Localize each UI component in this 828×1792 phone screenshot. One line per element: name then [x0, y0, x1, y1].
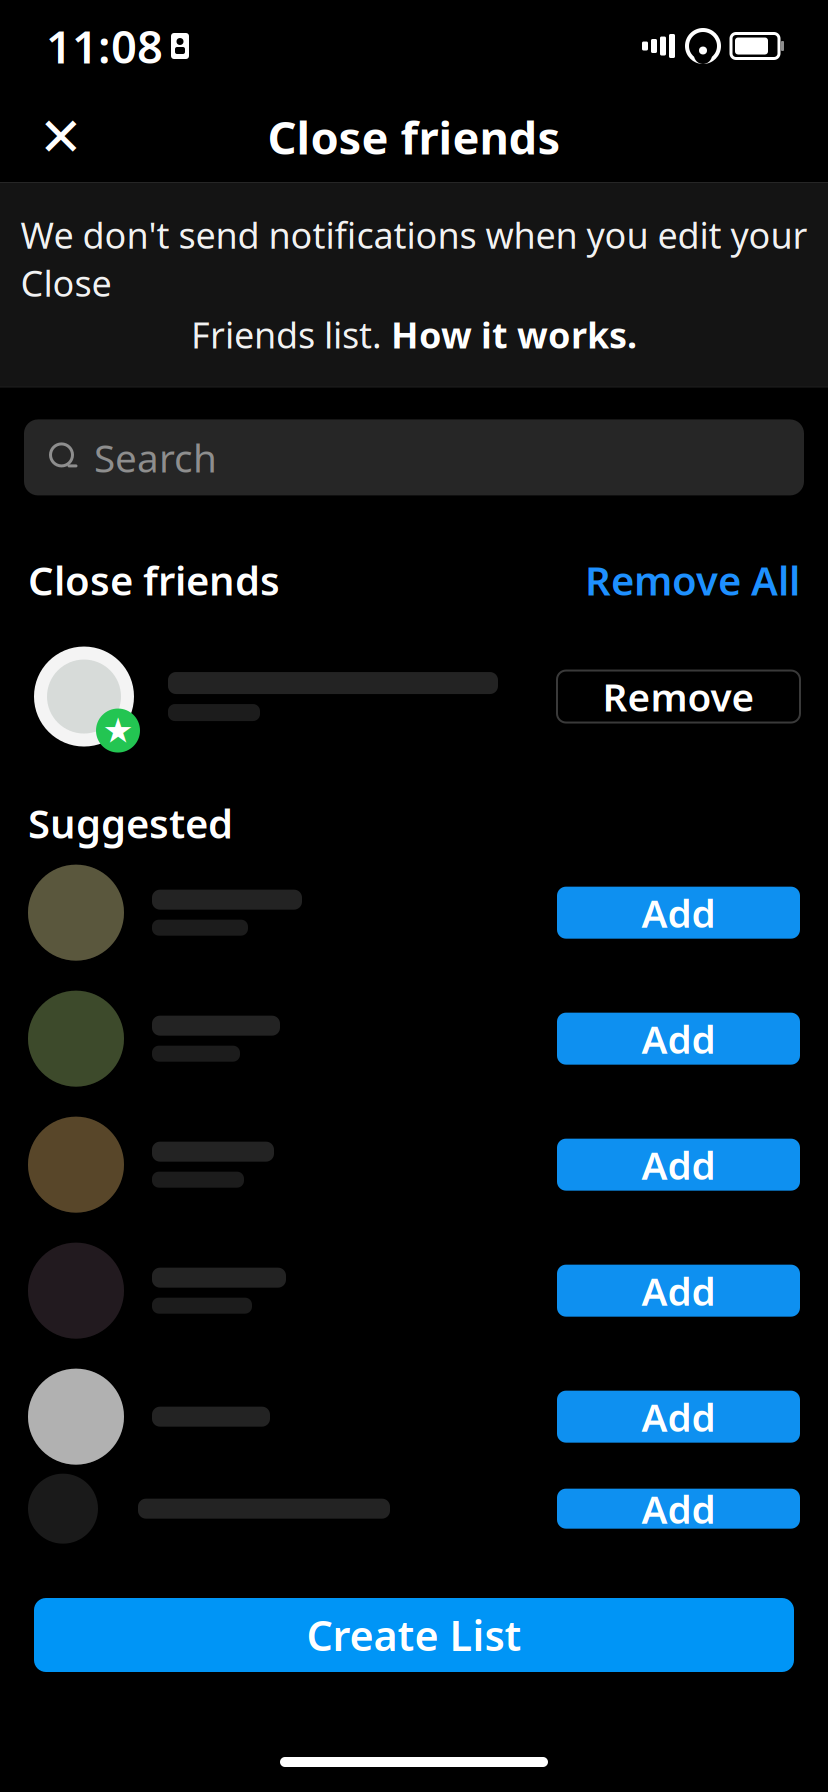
staticText: Add — [641, 1139, 715, 1190]
button[interactable]: ★ — [0, 614, 828, 752]
button[interactable]: Search — [24, 419, 804, 495]
staticText: Close friends — [28, 553, 280, 606]
staticText: We don't send notifications when you edi… — [20, 211, 807, 307]
staticText: Remove All — [585, 553, 800, 606]
staticText: Suggested — [28, 796, 233, 850]
button[interactable]: We don't send notifications when you edi… — [0, 183, 828, 386]
staticText: ★ — [102, 711, 133, 750]
button[interactable]: Add — [0, 1228, 828, 1354]
staticText: Close friends — [267, 107, 560, 167]
button[interactable]: Add — [0, 976, 828, 1102]
staticText: Add — [641, 1391, 715, 1442]
staticText: Add — [641, 1483, 715, 1534]
staticText: Remove — [602, 671, 754, 722]
staticText: Add — [641, 1265, 715, 1316]
button[interactable]: Remove All — [585, 545, 800, 614]
button[interactable]: Add — [0, 850, 828, 976]
staticText: Add — [641, 1013, 715, 1064]
staticText: Search — [94, 432, 217, 483]
button[interactable]: Add — [0, 1354, 828, 1480]
staticText: ✕ — [38, 107, 83, 167]
staticText: How it works. — [391, 311, 637, 358]
staticText: Add — [641, 887, 715, 938]
staticText: 11:08 — [46, 16, 163, 76]
button[interactable]: Close — [24, 100, 98, 174]
staticText: Friends list. — [191, 311, 391, 358]
button[interactable]: Add — [0, 1102, 828, 1228]
button[interactable]: Create List — [34, 1598, 794, 1672]
button[interactable]: Add — [0, 1480, 828, 1538]
staticText: Create List — [306, 1608, 521, 1662]
